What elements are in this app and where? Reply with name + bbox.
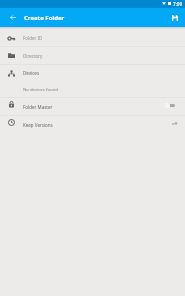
button[interactable]: Directory	[0, 47, 185, 64]
staticText: Folder Master	[23, 104, 53, 110]
button[interactable]: Back	[0, 8, 24, 27]
staticText: Keep Versions	[23, 122, 53, 128]
staticText: Devices	[23, 70, 40, 76]
staticText: 7:09	[173, 1, 183, 7]
button[interactable]: Folder Master	[0, 98, 185, 115]
staticText: off	[172, 121, 178, 127]
staticText: No devices found	[23, 86, 58, 92]
staticText: Directory	[23, 53, 43, 59]
button[interactable]: Folder ID	[0, 27, 185, 46]
button[interactable]: Save	[165, 8, 185, 27]
button[interactable]: Devices	[0, 65, 185, 97]
button[interactable]: Keep Versions	[0, 116, 185, 133]
staticText: Folder ID	[23, 35, 43, 41]
staticText: Create Folder	[24, 14, 65, 22]
